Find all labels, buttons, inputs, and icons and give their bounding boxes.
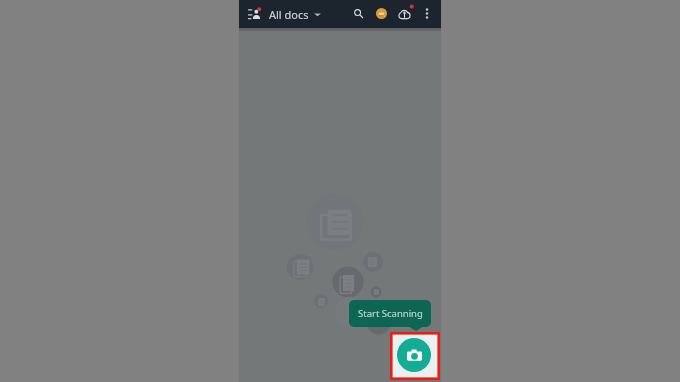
button[interactable]: Start scanning [397,338,431,372]
button[interactable]: All docs [269,5,321,24]
button[interactable]: Start Scanning [349,300,431,327]
button[interactable]: Search [348,3,370,25]
button[interactable]: More options [417,3,437,23]
button[interactable]: Upload to cloud [393,2,415,24]
staticText: All docs [269,7,309,22]
button[interactable]: Account [371,3,392,24]
button[interactable]: Open navigation drawer [243,2,266,26]
staticText: Start Scanning [358,307,423,320]
